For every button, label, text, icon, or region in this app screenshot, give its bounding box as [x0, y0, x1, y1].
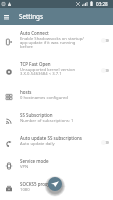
staticText: Auto Connect [20, 30, 49, 36]
button[interactable]: SS Subscription [0, 107, 113, 131]
staticText: SS Subscription [20, 112, 53, 118]
staticText: VPN [20, 164, 29, 170]
button[interactable]: Auto update SS subscriptions [0, 131, 113, 153]
button[interactable]: hosts [0, 84, 113, 107]
staticText: TCP Fast Open [20, 61, 51, 67]
staticText: hosts [20, 89, 32, 95]
staticText: 0 hostnames configured [20, 95, 68, 101]
button[interactable]: Navigation menu [0, 8, 13, 25]
staticText: Enable Shadowsocks on startup/app update… [20, 36, 85, 50]
staticText: Settings [19, 12, 43, 21]
staticText: SOCKS5 proxy [20, 181, 50, 187]
staticText: Unsupported kernel version 3.X.0-5463684… [20, 67, 85, 77]
staticText: 1080 [20, 187, 30, 193]
button[interactable]: Auto Connect [0, 25, 113, 56]
button[interactable]: SOCKS5 proxy [0, 176, 113, 199]
button[interactable]: Service mode [0, 153, 113, 176]
staticText: Service mode [20, 158, 49, 164]
staticText: Auto update daily [20, 141, 55, 147]
button[interactable]: Connect [48, 177, 62, 191]
staticText: 03:28 [96, 1, 108, 7]
staticText: Number of subscriptions: 1 [20, 118, 74, 124]
button[interactable]: TCP Fast Open [0, 56, 113, 84]
staticText: Auto update SS subscriptions [20, 135, 82, 141]
